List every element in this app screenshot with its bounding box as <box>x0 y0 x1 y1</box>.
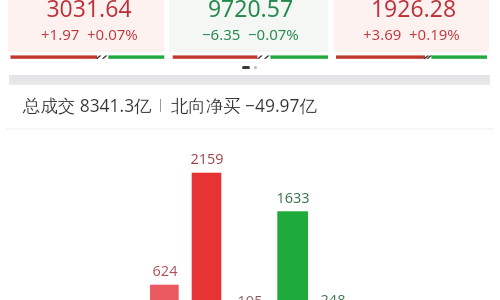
staticText: 2159 <box>172 148 242 168</box>
button[interactable]: Page 1 of 2 <box>242 66 250 69</box>
staticText: 3031.64 <box>11 0 167 23</box>
staticText: 1926.28 <box>336 0 491 23</box>
button[interactable]: Advance decline distribution chart <box>0 130 500 300</box>
staticText: +3.69 <box>363 24 402 44</box>
staticText: 总成交 8341.3亿 <box>23 93 152 117</box>
staticText: 248 <box>298 289 368 300</box>
button[interactable]: 9720.57 <box>169 0 328 52</box>
button[interactable]: Page 2 of 2 <box>254 66 257 69</box>
staticText: +0.19% <box>409 24 460 44</box>
staticText: 624 <box>130 260 200 280</box>
staticText: 9720.57 <box>171 0 330 23</box>
staticText: −0.07% <box>248 24 299 44</box>
button[interactable]: 1926.28 <box>334 0 489 52</box>
button[interactable]: 3031.64 <box>8 0 164 52</box>
staticText: −6.35 <box>202 24 241 44</box>
staticText: 1633 <box>258 187 328 207</box>
staticText: 105 <box>215 290 285 300</box>
staticText: 北向净买 −49.97亿 <box>171 93 317 117</box>
button[interactable]: 总成交 8341.3亿 <box>23 93 317 117</box>
staticText: +0.07% <box>87 24 138 44</box>
staticText: +1.97 <box>41 24 80 44</box>
